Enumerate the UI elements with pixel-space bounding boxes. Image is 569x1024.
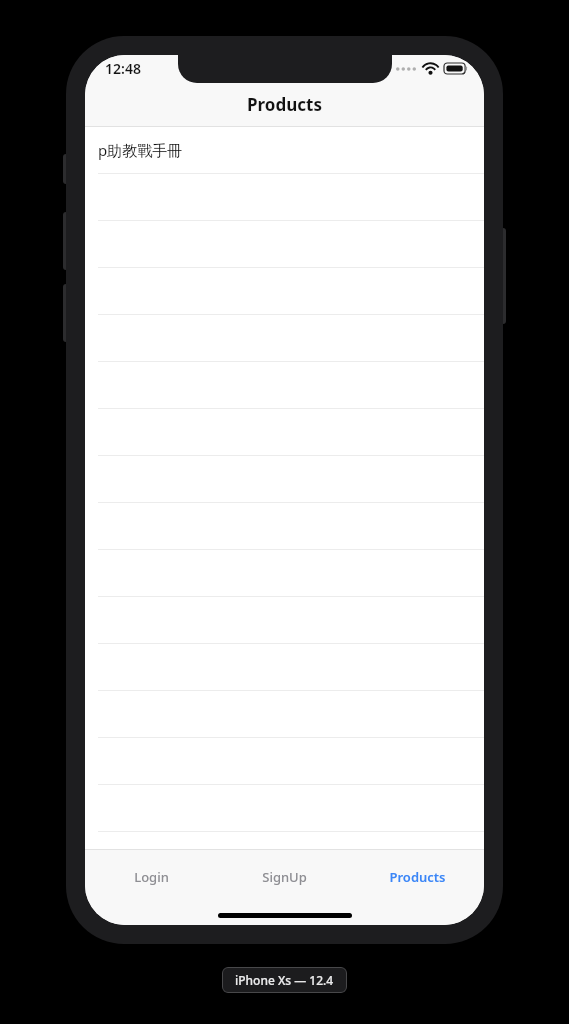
staticText: 12:48 [105,59,141,78]
staticText: Products [247,93,322,116]
staticText: iPhone Xs — 12.4 [235,972,334,988]
staticText: Products [389,868,446,886]
staticText: SignUp [262,868,307,886]
button[interactable]: p助教戰手冊 [85,127,484,174]
button[interactable]: Login [85,850,218,904]
staticText: Login [134,868,169,886]
button[interactable]: SignUp [218,850,351,904]
staticText: p助教戰手冊 [98,140,183,160]
button[interactable]: Products [351,850,484,904]
